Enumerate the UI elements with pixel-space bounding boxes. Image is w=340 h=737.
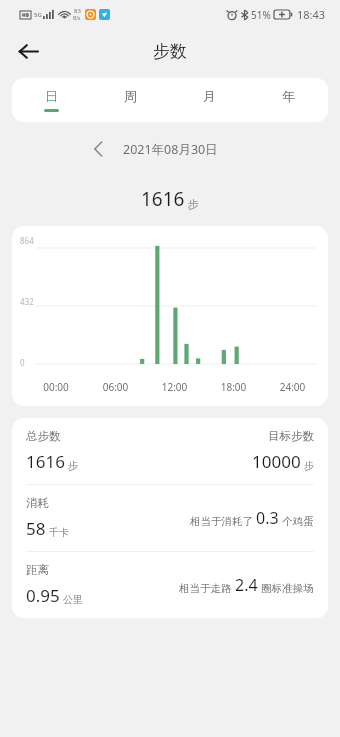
staticText: 千卡 (49, 526, 69, 539)
staticText: 0 (20, 357, 25, 368)
staticText: 0.3 (256, 507, 279, 529)
staticText: 51% (251, 8, 271, 22)
staticText: 步 (68, 459, 78, 472)
staticText: 06:00 (86, 380, 145, 394)
button[interactable]: Back (8, 31, 48, 71)
staticText: 步 (304, 459, 314, 472)
staticText: 周 (124, 88, 137, 104)
staticText: 5G (34, 11, 42, 19)
button[interactable]: 距离 (12, 552, 328, 618)
staticText: 10000 (252, 450, 301, 473)
staticText: 月 (203, 88, 216, 104)
staticText: B/s (73, 15, 81, 22)
staticText: 2021年08月30日 (123, 141, 218, 158)
staticText: 总步数 (26, 429, 61, 443)
staticText: 1616 (141, 186, 185, 212)
staticText: 距离 (26, 563, 49, 577)
button[interactable]: 总步数 (12, 418, 328, 484)
staticText: 00:00 (26, 380, 86, 394)
staticText: 1616 (26, 450, 65, 473)
button[interactable]: 月 (170, 78, 249, 122)
staticText: 83 (74, 7, 81, 15)
staticText: 日 (45, 88, 58, 104)
staticText: 个鸡蛋 (282, 515, 314, 528)
staticText: 2.4 (235, 574, 258, 596)
staticText: 58 (26, 517, 46, 540)
button[interactable]: 年 (249, 78, 328, 122)
staticText: 18:43 (297, 7, 326, 22)
staticText: 步数 (153, 41, 187, 62)
staticText: 年 (282, 88, 295, 104)
staticText: 消耗 (26, 496, 49, 510)
staticText: 步 (188, 197, 199, 211)
button[interactable]: 日 (12, 78, 91, 122)
staticText: 18:00 (204, 380, 263, 394)
staticText: 24:00 (263, 380, 322, 394)
staticText: 12:00 (145, 380, 204, 394)
button[interactable]: 消耗 (12, 485, 328, 551)
staticText: 圈标准操场 (261, 582, 314, 595)
staticText: 目标步数 (268, 429, 314, 443)
staticText: 864 (20, 235, 34, 246)
button[interactable]: Previous day (85, 136, 111, 162)
staticText: 0.95 (26, 584, 60, 607)
staticText: 相当于消耗了 (190, 515, 253, 528)
staticText: 相当于走路 (179, 582, 232, 595)
button[interactable]: 周 (91, 78, 170, 122)
staticText: 公里 (63, 593, 83, 606)
staticText: 432 (20, 296, 34, 307)
